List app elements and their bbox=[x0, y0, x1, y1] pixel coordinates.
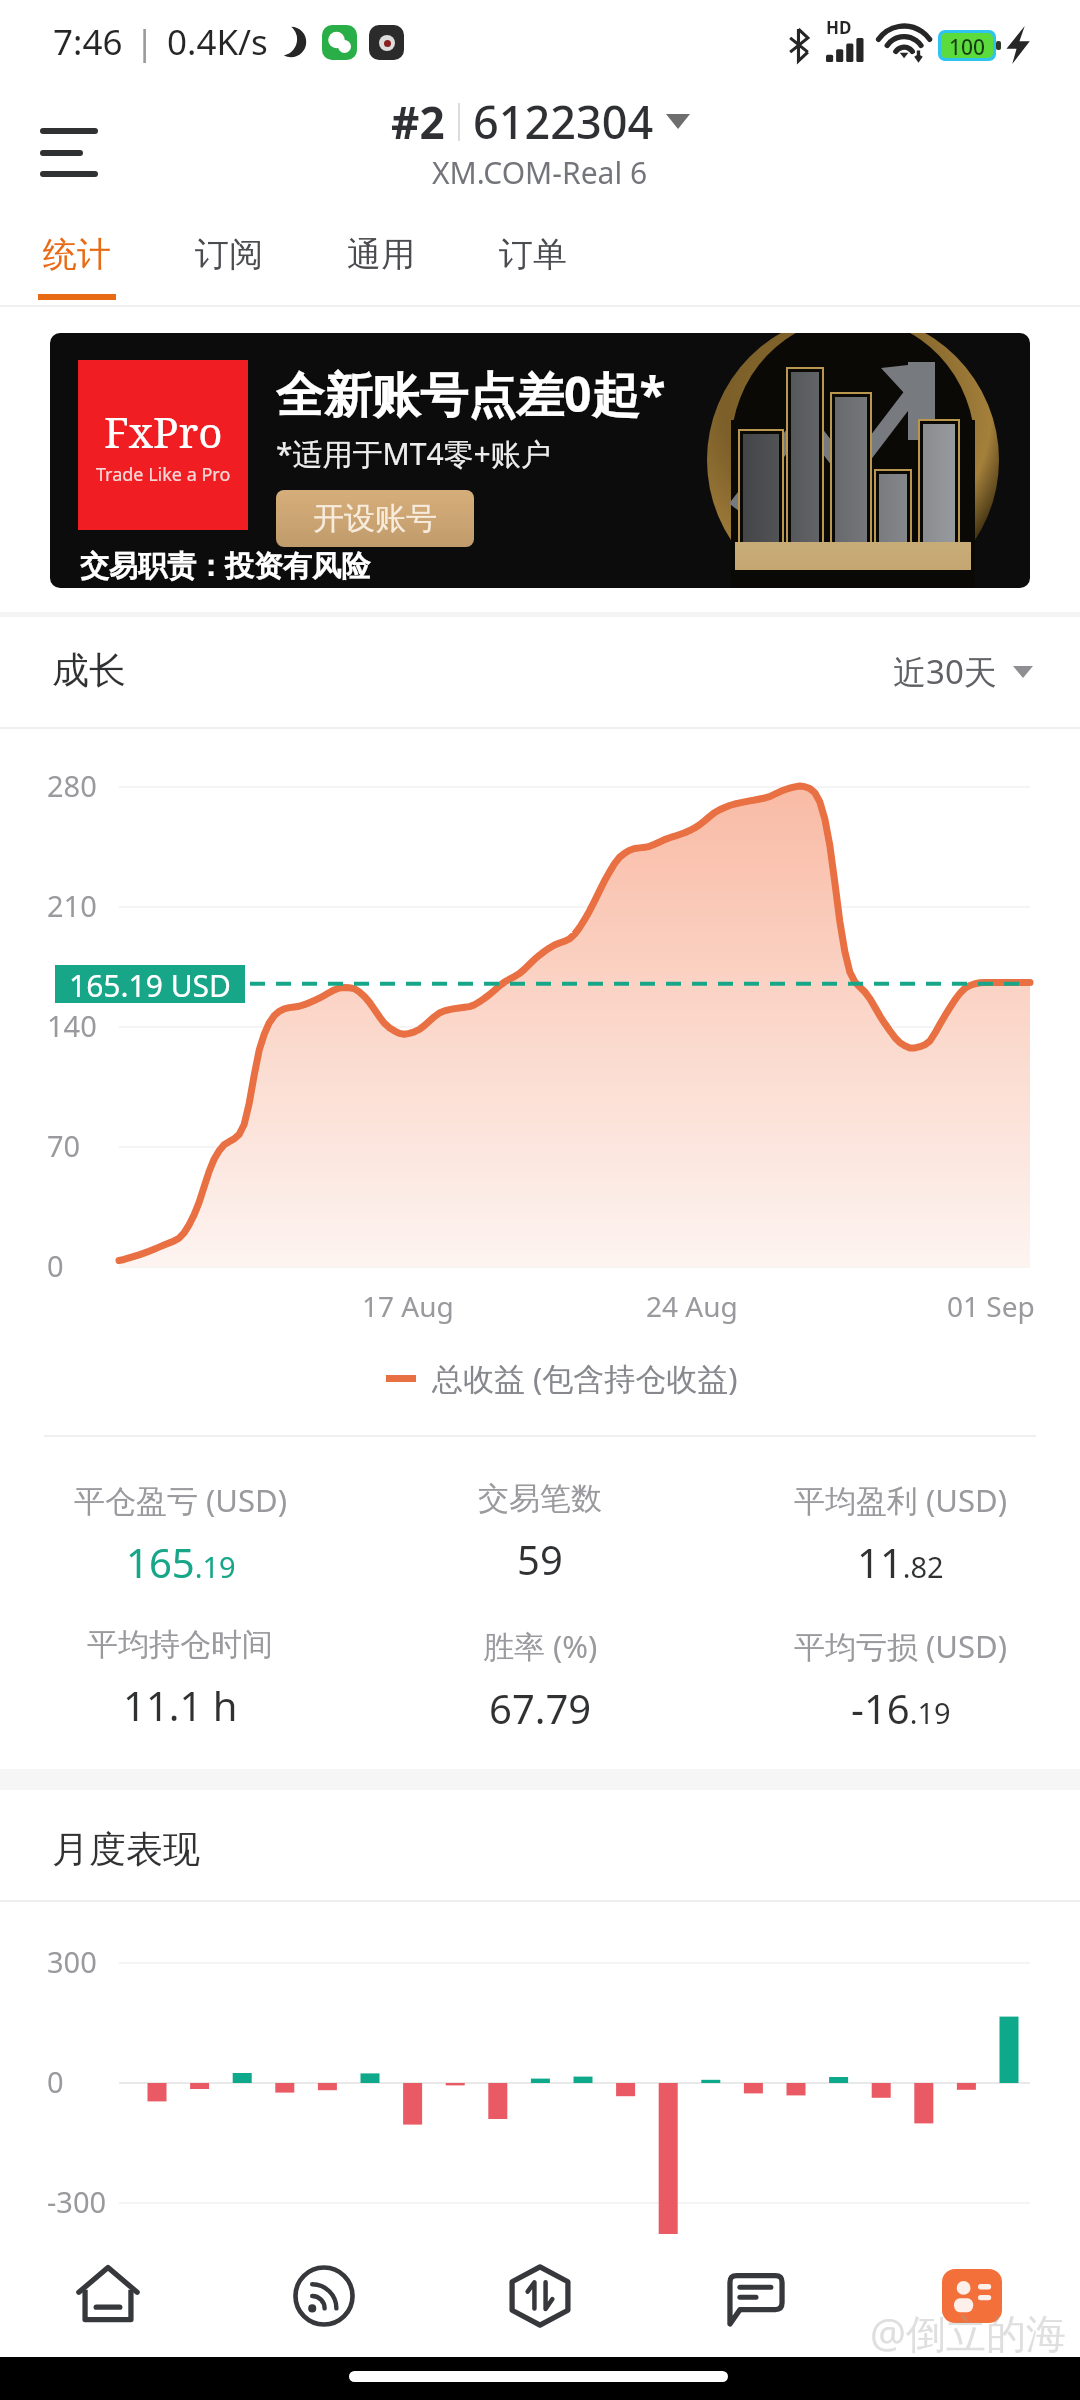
staticText: 交易职责：投资有风险 bbox=[80, 548, 370, 585]
button[interactable]: 订阅 bbox=[190, 215, 268, 307]
staticText: XM.COM-Real 6 bbox=[432, 152, 648, 193]
staticText: 胜率 (%) bbox=[483, 1625, 598, 1667]
staticText: #2 bbox=[391, 92, 445, 152]
button[interactable]: 近30天 bbox=[893, 649, 1033, 694]
staticText: 平均盈利 (USD) bbox=[794, 1479, 1007, 1521]
staticText: 订单 bbox=[499, 233, 567, 276]
staticText: 总收益 (包含持仓收益) bbox=[432, 1357, 738, 1399]
staticText: 100 bbox=[949, 33, 986, 58]
staticText: 平均持仓时间 bbox=[87, 1625, 273, 1664]
staticText: FxPro bbox=[104, 403, 223, 460]
button[interactable]: Home bbox=[0, 2235, 216, 2357]
staticText: 300 bbox=[47, 1942, 97, 1981]
staticText: HD bbox=[826, 16, 852, 39]
staticText: 通用 bbox=[347, 233, 415, 276]
staticText: 280 bbox=[47, 766, 97, 805]
staticText: 平仓盈亏 (USD) bbox=[74, 1479, 287, 1521]
staticText: 月度表现 bbox=[52, 1826, 200, 1873]
staticText: 近30天 bbox=[893, 649, 997, 694]
staticText: 67.79 bbox=[489, 1681, 592, 1735]
staticText: 17 Aug bbox=[362, 1287, 454, 1325]
button[interactable]: 通用 bbox=[342, 215, 420, 307]
staticText: 7:46 bbox=[53, 18, 123, 66]
staticText: 165.19 USD bbox=[69, 965, 231, 1003]
staticText: *适用于MT4零+账户 bbox=[276, 433, 551, 474]
button[interactable]: Feed bbox=[216, 2235, 432, 2357]
staticText: 11.82 bbox=[857, 1535, 944, 1589]
button[interactable]: FxPro bbox=[50, 333, 1030, 588]
staticText: 210 bbox=[47, 886, 97, 925]
button[interactable]: Profile bbox=[864, 2235, 1080, 2357]
button[interactable]: #2 bbox=[330, 90, 750, 215]
staticText: Trade Like a Pro bbox=[96, 462, 231, 487]
staticText: 59 bbox=[517, 1532, 563, 1586]
staticText: 70 bbox=[47, 1126, 81, 1165]
button[interactable]: Menu bbox=[18, 102, 120, 204]
button[interactable]: 统计 bbox=[38, 215, 116, 307]
staticText: 0 bbox=[47, 2062, 64, 2101]
staticText: 平均亏损 (USD) bbox=[794, 1625, 1007, 1667]
staticText: 165.19 bbox=[126, 1535, 236, 1589]
staticText: 140 bbox=[47, 1006, 97, 1045]
button[interactable]: 开设账号 bbox=[276, 490, 474, 547]
staticText: 成长 bbox=[52, 647, 126, 694]
staticText: 0 bbox=[47, 1246, 64, 1285]
staticText: 01 Sep bbox=[947, 1287, 1035, 1325]
staticText: 24 Aug bbox=[646, 1287, 738, 1325]
staticText: -16.19 bbox=[851, 1681, 951, 1735]
staticText: 统计 bbox=[43, 233, 111, 276]
staticText: 订阅 bbox=[195, 233, 263, 276]
staticText: 11.1 h bbox=[123, 1678, 238, 1732]
button[interactable]: 订单 bbox=[494, 215, 572, 307]
staticText: 交易笔数 bbox=[478, 1479, 602, 1518]
button[interactable]: Trade bbox=[432, 2235, 648, 2357]
staticText: | bbox=[135, 18, 155, 66]
staticText: 0.4K/s bbox=[167, 18, 268, 66]
staticText: 全新账号点差0起* bbox=[276, 361, 666, 427]
staticText: 6122304 bbox=[473, 91, 654, 152]
staticText: -300 bbox=[47, 2182, 107, 2221]
staticText: @倒立的海 bbox=[870, 2305, 1066, 2360]
staticText: 开设账号 bbox=[313, 499, 437, 538]
button[interactable]: Messages bbox=[648, 2235, 864, 2357]
